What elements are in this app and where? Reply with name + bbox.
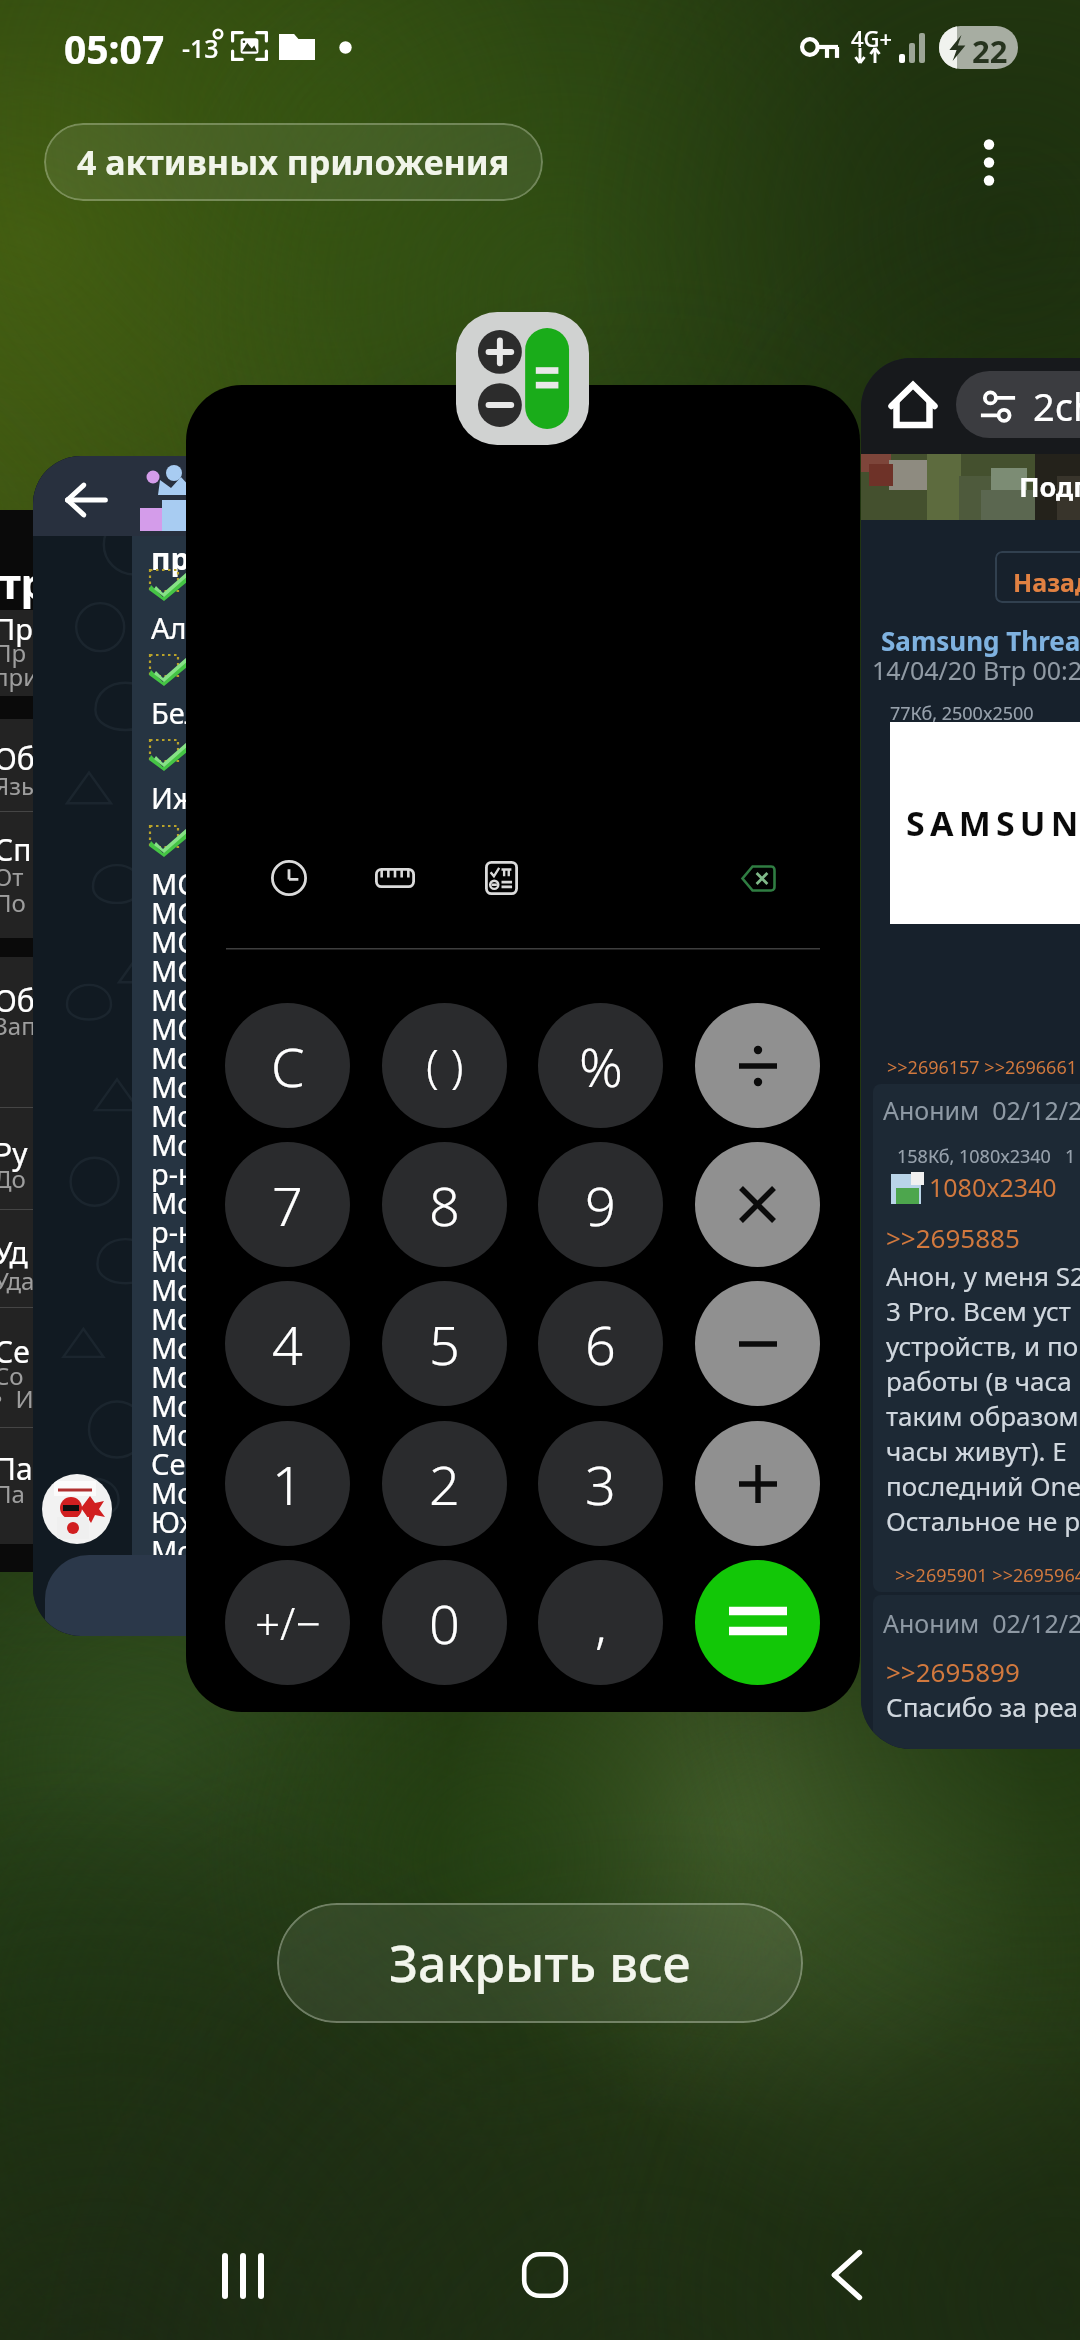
- staticText: >>2695899: [886, 1654, 1020, 1689]
- staticText: От: [0, 860, 24, 893]
- staticText: устройств, и по: [886, 1328, 1079, 1363]
- staticText: Па: [0, 1477, 25, 1510]
- button[interactable]: 2: [382, 1421, 507, 1546]
- staticText: Язы: [0, 769, 40, 802]
- button[interactable]: Home: [485, 2215, 605, 2335]
- staticText: 8: [429, 1168, 460, 1242]
- staticText: 05:07: [64, 22, 165, 75]
- staticText: Мо: [151, 1357, 195, 1396]
- staticText: Samsung Thread /: [881, 623, 1080, 658]
- button[interactable]: More options: [949, 124, 1029, 204]
- staticText: Юж: [151, 1502, 202, 1541]
- staticText: 4G+: [851, 23, 893, 53]
- button[interactable]: 8: [382, 1142, 507, 1267]
- staticText: Назад: [1013, 565, 1080, 599]
- staticText: 1: [272, 1447, 303, 1521]
- staticText: Остальное не р: [886, 1503, 1080, 1538]
- staticText: МС: [151, 1009, 196, 1048]
- staticText: >>2695901 >>2695964: [895, 1563, 1080, 1588]
- staticText: Мо: [151, 1531, 195, 1570]
- staticText: Со: [0, 1359, 24, 1392]
- staticText: ,: [595, 1587, 607, 1658]
- staticText: Пр: [0, 636, 27, 669]
- staticText: Мо: [151, 1096, 195, 1135]
- button[interactable]: 9: [538, 1142, 663, 1267]
- button[interactable]: C: [225, 1003, 350, 1128]
- button[interactable]: [695, 1281, 820, 1406]
- staticText: Уда: [0, 1264, 35, 1297]
- staticText: 22: [972, 30, 1008, 69]
- staticText: Мо: [151, 1328, 195, 1367]
- button[interactable]: Закрыть все: [277, 1903, 803, 2023]
- staticText: Се: [0, 1331, 30, 1372]
- staticText: Иж: [151, 778, 195, 817]
- staticText: Ру: [0, 1133, 28, 1174]
- staticText: 4 активных приложения: [77, 139, 510, 185]
- button[interactable]: 7: [225, 1142, 350, 1267]
- button[interactable]: [695, 1421, 820, 1546]
- button[interactable]: %: [538, 1003, 663, 1128]
- button[interactable]: [995, 551, 1080, 603]
- staticText: 9: [585, 1168, 616, 1242]
- staticText: Сп: [0, 829, 32, 870]
- staticText: Мо: [151, 1270, 195, 1309]
- button[interactable]: [695, 1142, 820, 1267]
- button[interactable]: [695, 1003, 820, 1128]
- staticText: SAMSUNG: [906, 800, 1080, 846]
- staticText: МС: [151, 893, 196, 932]
- button[interactable]: при: [33, 456, 313, 1636]
- staticText: 5: [429, 1307, 460, 1381]
- staticText: Мо: [151, 1038, 195, 1077]
- staticText: +/−: [255, 1593, 321, 1653]
- staticText: Бел: [151, 693, 202, 732]
- staticText: Анон, у меня S2: [886, 1258, 1080, 1293]
- button[interactable]: 3: [538, 1421, 663, 1546]
- staticText: Об: [0, 980, 35, 1021]
- staticText: Об: [0, 738, 35, 779]
- staticText: ( ): [426, 1034, 464, 1097]
- staticText: Па: [0, 1448, 33, 1489]
- staticText: 3: [585, 1447, 616, 1521]
- button[interactable]: C: [186, 385, 860, 1712]
- staticText: • И: [0, 1382, 34, 1415]
- staticText: часы живут). Е: [886, 1433, 1067, 1468]
- staticText: при: [0, 660, 39, 693]
- staticText: р-н: [151, 1212, 196, 1251]
- staticText: Подписк: [1019, 468, 1080, 505]
- button[interactable]: ,: [538, 1560, 663, 1685]
- staticText: 2ch.c: [1033, 380, 1080, 432]
- button[interactable]: 6: [538, 1281, 663, 1406]
- staticText: при: [151, 538, 210, 579]
- staticText: Спасибо за реа: [886, 1689, 1079, 1724]
- staticText: работы (в часа: [886, 1363, 1072, 1398]
- button[interactable]: 4 активных приложения: [44, 123, 543, 201]
- button[interactable]: ( ): [382, 1003, 507, 1128]
- staticText: C: [271, 1029, 305, 1103]
- staticText: >>2695885: [886, 1220, 1020, 1255]
- button[interactable]: Back: [788, 2215, 908, 2335]
- button[interactable]: 4: [225, 1281, 350, 1406]
- staticText: таким образом: [886, 1398, 1079, 1433]
- staticText: Настр: [0, 554, 48, 611]
- button[interactable]: 5: [382, 1281, 507, 1406]
- staticText: МС: [151, 980, 196, 1019]
- staticText: Аноним 02/12/25 В: [883, 1606, 1080, 1640]
- button[interactable]: Recent apps: [183, 2215, 303, 2335]
- staticText: 158Кб, 1080x2340 1: [897, 1144, 1076, 1169]
- staticText: Мо: [151, 1473, 195, 1512]
- button[interactable]: 2ch.c: [861, 358, 1080, 1749]
- button[interactable]: 0: [382, 1560, 507, 1685]
- staticText: >>2696157 >>2696661 >: [887, 1055, 1080, 1080]
- staticText: Зап: [0, 1009, 36, 1042]
- staticText: -13: [182, 31, 219, 65]
- staticText: Мо: [151, 1415, 195, 1454]
- button[interactable]: Настр: [0, 510, 186, 1572]
- staticText: МС: [151, 951, 196, 990]
- staticText: Мо: [151, 1386, 195, 1425]
- staticText: 7: [272, 1168, 303, 1242]
- button[interactable]: +/−: [225, 1560, 350, 1685]
- button[interactable]: [695, 1560, 820, 1685]
- staticText: Мо: [151, 1241, 195, 1280]
- button[interactable]: 1: [225, 1421, 350, 1546]
- staticText: 4: [272, 1307, 303, 1381]
